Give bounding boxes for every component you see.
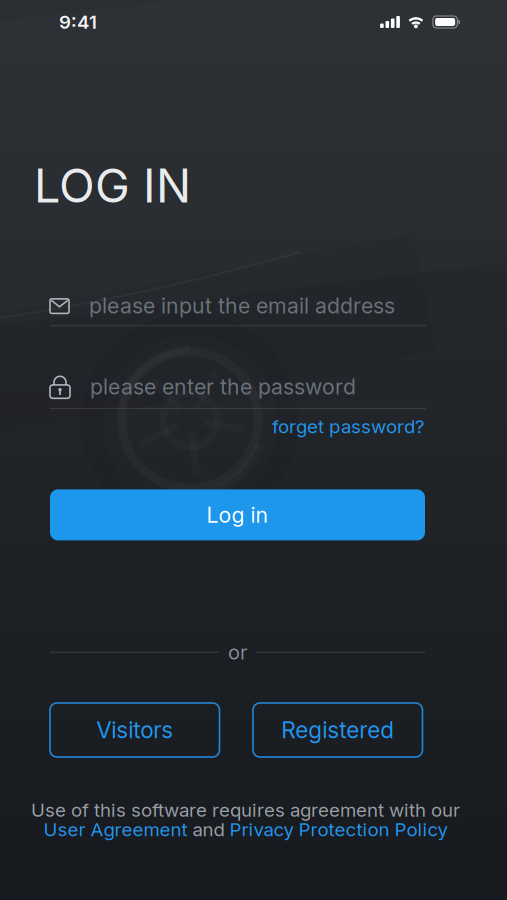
button[interactable]: Registered xyxy=(253,703,422,757)
button[interactable]: forget password? xyxy=(272,415,425,437)
staticText: Visitors xyxy=(96,717,173,743)
staticText: or xyxy=(228,640,247,664)
staticText: and xyxy=(187,818,229,840)
staticText: please enter the password xyxy=(90,374,356,399)
staticText: User Agreement xyxy=(43,818,187,840)
staticText: Registered xyxy=(281,717,394,743)
staticText: Privacy Protection Policy xyxy=(229,818,447,840)
button[interactable]: User Agreement xyxy=(43,818,187,840)
staticText: please input the email address xyxy=(89,293,395,318)
button[interactable]: Log in xyxy=(50,489,425,540)
button[interactable]: Privacy Protection Policy xyxy=(229,818,447,840)
button[interactable]: please input the email address xyxy=(50,293,426,326)
staticText: forget password? xyxy=(272,415,425,437)
button[interactable]: Visitors xyxy=(50,703,219,757)
button[interactable]: please enter the password xyxy=(50,374,426,409)
staticText: Log in xyxy=(206,502,268,527)
staticText: LOG IN xyxy=(34,158,191,213)
staticText: 9:41 xyxy=(59,11,97,33)
staticText: Use of this software requires agreement … xyxy=(31,799,460,821)
